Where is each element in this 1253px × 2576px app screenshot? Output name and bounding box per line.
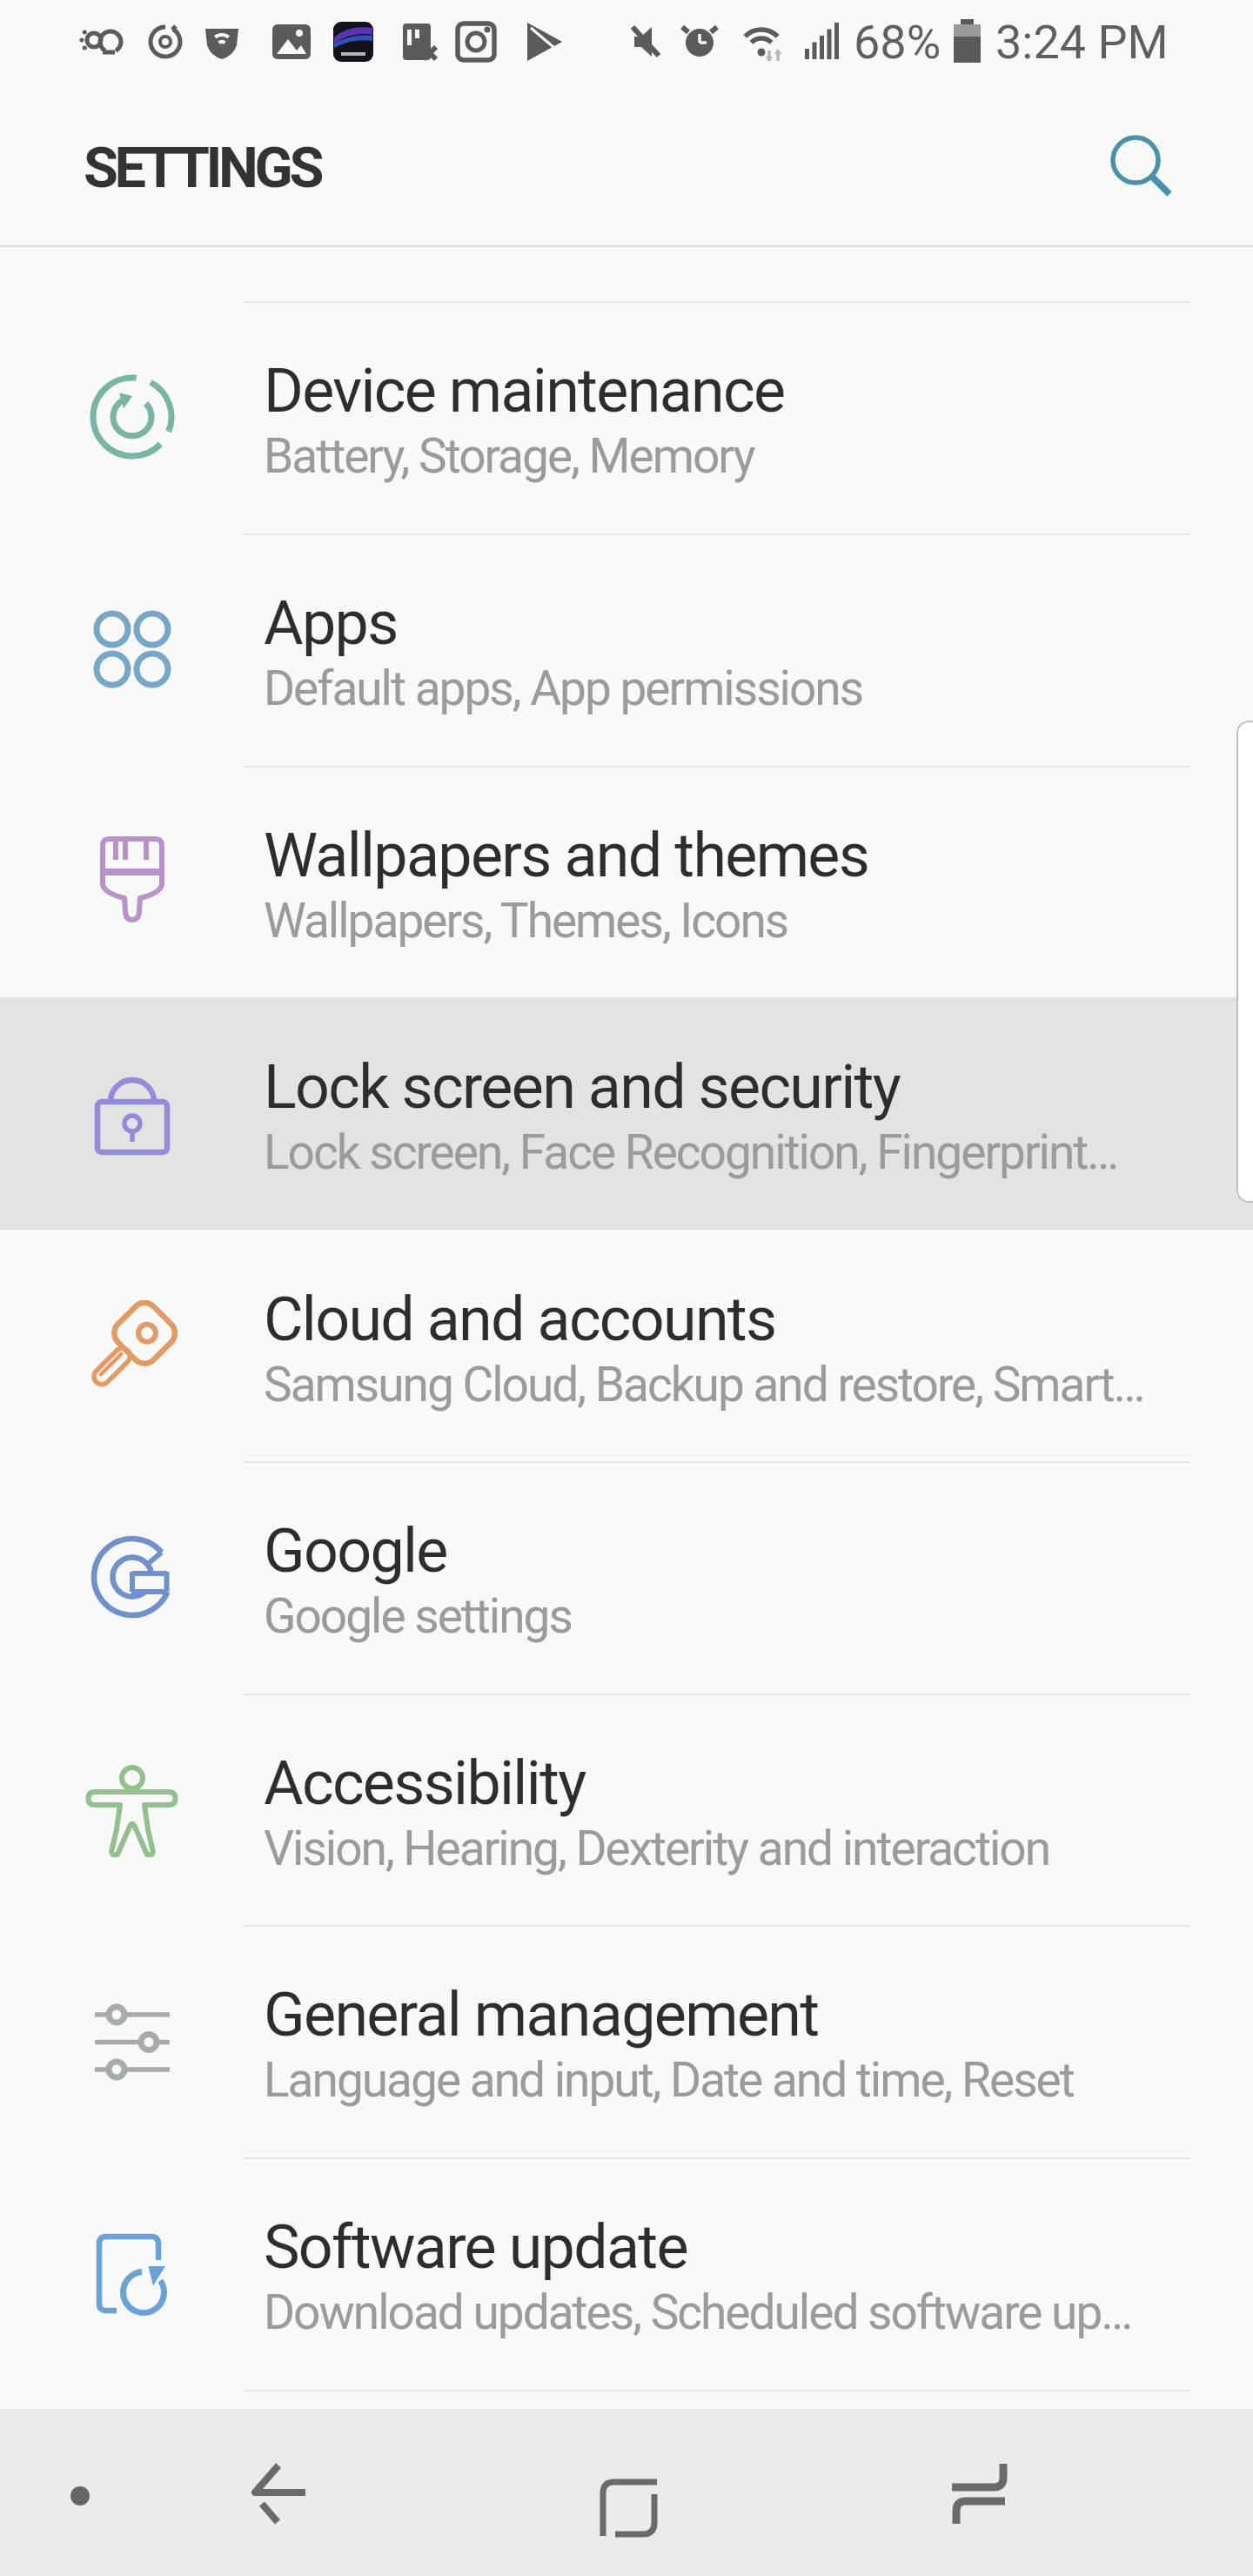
staticText: Vision, Hearing, Dexterity and interacti… — [264, 1821, 1050, 1876]
staticText: Device maintenance — [264, 355, 785, 426]
staticText: Lock screen, Face Recognition, Fingerpri… — [264, 1124, 1118, 1180]
button[interactable]: Lock screen and security — [0, 997, 1253, 1230]
button[interactable]: Software update — [0, 2157, 1253, 2390]
staticText: Google settings — [264, 1588, 572, 1644]
staticText: Accessibility — [264, 1748, 586, 1819]
staticText: Download updates, Scheduled software up… — [264, 2284, 1132, 2340]
staticText: Wallpapers and themes — [264, 820, 869, 891]
staticText: Cloud and accounts — [264, 1284, 776, 1355]
button[interactable] — [559, 2423, 698, 2562]
staticText: Software update — [264, 2211, 687, 2283]
button[interactable]: Apps — [0, 533, 1253, 766]
staticText: Language and input, Date and time, Reset — [264, 2052, 1074, 2108]
staticText: SETTINGS — [84, 135, 321, 201]
button[interactable] — [207, 2423, 346, 2562]
button[interactable] — [1102, 126, 1180, 205]
staticText: 3:24 PM — [995, 15, 1169, 70]
button[interactable]: Wallpapers and themes — [0, 766, 1253, 998]
button[interactable]: Cloud and accounts — [0, 1230, 1253, 1462]
staticText: Samsung Cloud, Backup and restore, Smart… — [264, 1357, 1144, 1412]
staticText: General management — [264, 1979, 819, 2050]
button[interactable]: Accessibility — [0, 1694, 1253, 1926]
button[interactable]: Device maintenance — [0, 301, 1253, 533]
button[interactable] — [910, 2423, 1049, 2562]
staticText: Battery, Storage, Memory — [264, 428, 754, 484]
staticText: 68% — [854, 15, 941, 70]
staticText: Google — [264, 1515, 447, 1587]
button[interactable]: General management — [0, 1925, 1253, 2157]
staticText: Lock screen and security — [264, 1051, 901, 1123]
button[interactable]: Google — [0, 1461, 1253, 1694]
staticText: Default apps, App permissions — [264, 661, 863, 716]
staticText: Apps — [264, 587, 398, 659]
staticText: Wallpapers, Themes, Icons — [264, 893, 788, 949]
